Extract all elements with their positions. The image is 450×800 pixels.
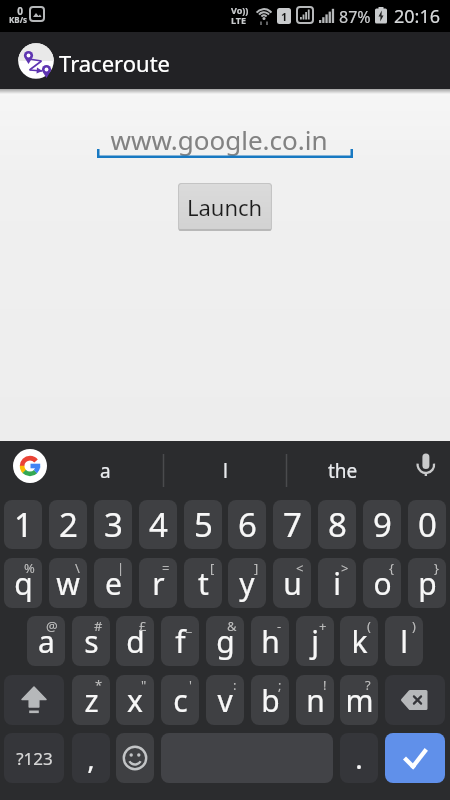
button[interactable]: 9 (363, 500, 401, 549)
staticText: + (319, 617, 327, 635)
staticText: r (152, 563, 165, 604)
button[interactable]: i (318, 558, 356, 608)
button[interactable]: t (184, 558, 222, 608)
button[interactable]: 2 (49, 500, 87, 549)
staticText: . (355, 739, 363, 777)
button[interactable]: 5 (184, 500, 222, 549)
button[interactable]: d (116, 616, 154, 666)
staticText: p (418, 563, 437, 604)
button[interactable]: k (340, 616, 378, 666)
button[interactable]: j (296, 616, 334, 666)
staticText: a (100, 458, 111, 484)
button[interactable]: y (228, 558, 266, 608)
button[interactable]: f (161, 616, 199, 666)
staticText: ' (189, 676, 192, 694)
staticText: y (239, 563, 255, 604)
button[interactable]: 3 (94, 500, 132, 549)
staticText: t (198, 563, 209, 604)
staticText: 9 (373, 502, 392, 547)
button[interactable]: 4 (139, 500, 177, 549)
button[interactable]: 8 (318, 500, 356, 549)
button[interactable] (116, 733, 154, 783)
staticText: ? (365, 676, 371, 694)
button[interactable]: a (47, 441, 163, 500)
button[interactable]: p (408, 558, 446, 608)
button[interactable] (4, 675, 64, 725)
staticText: 3 (104, 502, 123, 547)
staticText: i (333, 563, 341, 604)
button[interactable] (398, 444, 450, 496)
staticText: d (126, 621, 145, 662)
staticText: o (373, 563, 392, 604)
staticText: { (389, 559, 394, 577)
staticText: z (84, 680, 99, 721)
staticText: LTE (231, 14, 247, 26)
staticText: Vo)) (231, 4, 249, 16)
staticText: 5 (194, 502, 213, 547)
button[interactable]: l (385, 616, 423, 666)
button[interactable]: q (4, 558, 42, 608)
button[interactable]: 6 (228, 500, 266, 549)
button[interactable]: n (296, 675, 334, 725)
button[interactable]: w (49, 558, 87, 608)
staticText: 20:16 (394, 4, 441, 29)
staticText: Traceroute (59, 48, 170, 78)
staticText: ] (254, 559, 259, 577)
button[interactable]: h (251, 616, 289, 666)
button[interactable]: a (27, 616, 65, 666)
staticText: 0 (11, 4, 29, 18)
button[interactable]: m (340, 675, 378, 725)
staticText: ) (412, 617, 416, 635)
button[interactable]: o (363, 558, 401, 608)
staticText: < (296, 559, 304, 577)
staticText: > (341, 559, 349, 577)
staticText: l (223, 458, 228, 484)
button[interactable] (13, 449, 47, 483)
button[interactable]: u (273, 558, 311, 608)
button[interactable] (385, 675, 445, 725)
staticText: 4 (149, 502, 168, 547)
button[interactable]: 7 (273, 500, 311, 549)
button[interactable]: z (72, 675, 110, 725)
button[interactable]: . (340, 733, 378, 783)
button[interactable]: r (139, 558, 177, 608)
button[interactable]: e (94, 558, 132, 608)
staticText: : (233, 676, 237, 694)
button[interactable]: ?123 (4, 733, 64, 783)
staticText: \ (75, 559, 80, 577)
button[interactable]: g (206, 616, 244, 666)
staticText: s (84, 621, 99, 662)
button[interactable]: 1 (4, 500, 42, 549)
staticText: ; (278, 676, 282, 694)
button[interactable] (385, 733, 445, 783)
staticText: KB/s (4, 14, 32, 25)
button[interactable]: x (116, 675, 154, 725)
button[interactable]: v (206, 675, 244, 725)
staticText: ! (323, 676, 327, 694)
button[interactable]: the (287, 441, 399, 500)
staticText: - (277, 617, 282, 635)
button[interactable]: s (72, 616, 110, 666)
staticText: = (162, 559, 170, 577)
button[interactable]: 0 (408, 500, 446, 549)
button[interactable]: Launch (178, 183, 272, 231)
staticText: _ (186, 617, 192, 635)
staticText: 6 (238, 502, 257, 547)
staticText: j (311, 621, 319, 662)
staticText: * (95, 676, 103, 694)
staticText: " (141, 676, 147, 694)
staticText: , (87, 739, 95, 777)
staticText: u (283, 563, 302, 604)
staticText: | (117, 559, 125, 577)
staticText: & (227, 617, 237, 635)
button[interactable]: www.google.co.in (97, 119, 353, 159)
button[interactable]: c (161, 675, 199, 725)
staticText: 1 (14, 502, 33, 547)
button[interactable]: l (164, 441, 286, 500)
staticText: @ (46, 617, 58, 635)
staticText: e (105, 563, 122, 604)
button[interactable]: b (251, 675, 289, 725)
staticText: a (38, 621, 55, 662)
button[interactable]: , (72, 733, 110, 783)
